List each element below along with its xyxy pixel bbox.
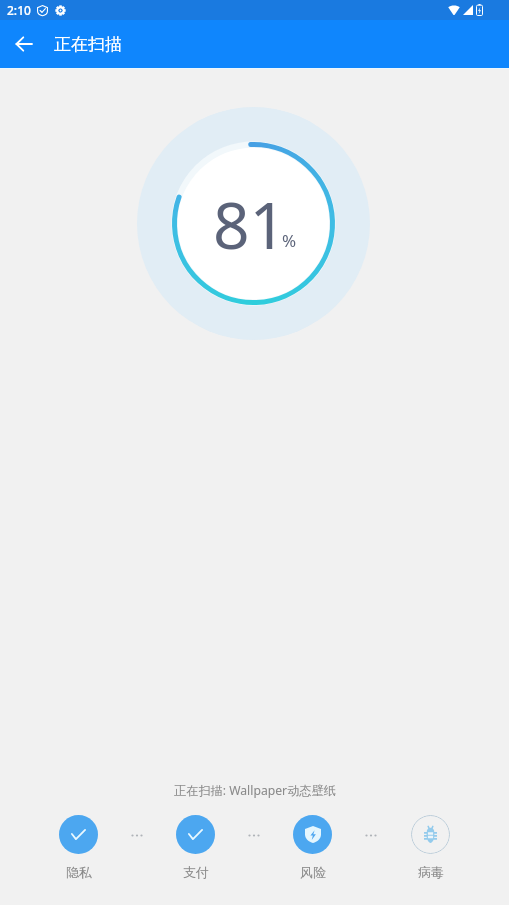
button[interactable]: 风险 [293,815,332,880]
button[interactable]: 隐私 [59,815,98,880]
staticText: 支付 [183,864,209,880]
button[interactable]: Back [0,20,48,68]
staticText: 正在扫描 [54,34,122,55]
staticText: % [282,229,297,252]
staticText: 病毒 [418,864,444,880]
staticText: 隐私 [66,864,92,880]
staticText: 正在扫描: Wallpaper动态壁纸 [174,782,336,799]
staticText: 2:10 [7,2,31,18]
button[interactable]: 支付 [176,815,215,880]
staticText: 风险 [300,864,326,880]
button[interactable]: 病毒 [411,815,450,880]
staticText: 81 [213,181,287,268]
